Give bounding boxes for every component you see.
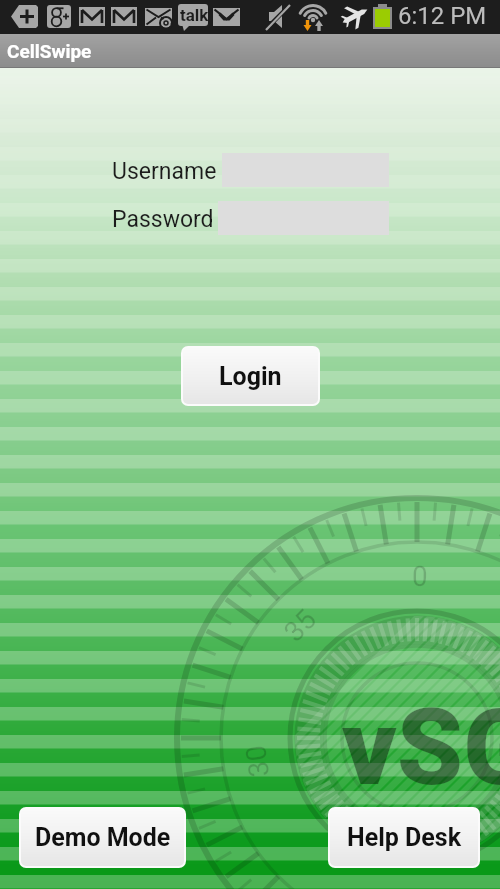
- staticText: vSG: [342, 686, 500, 810]
- staticText: 30: [239, 743, 276, 779]
- staticText: 0: [412, 560, 428, 593]
- staticText: 6:12 PM: [398, 2, 487, 30]
- button[interactable]: Demo Mode: [19, 807, 186, 868]
- staticText: Help Desk: [347, 823, 461, 852]
- button[interactable]: Help Desk: [328, 807, 480, 868]
- staticText: Username: [112, 158, 217, 185]
- staticText: talk: [180, 5, 209, 25]
- staticText: 35: [277, 602, 323, 648]
- staticText: Login: [219, 362, 282, 391]
- staticText: Password: [112, 206, 214, 233]
- staticText: CellSwipe: [7, 40, 92, 62]
- button[interactable]: Login: [181, 346, 320, 406]
- staticText: Demo Mode: [35, 823, 171, 852]
